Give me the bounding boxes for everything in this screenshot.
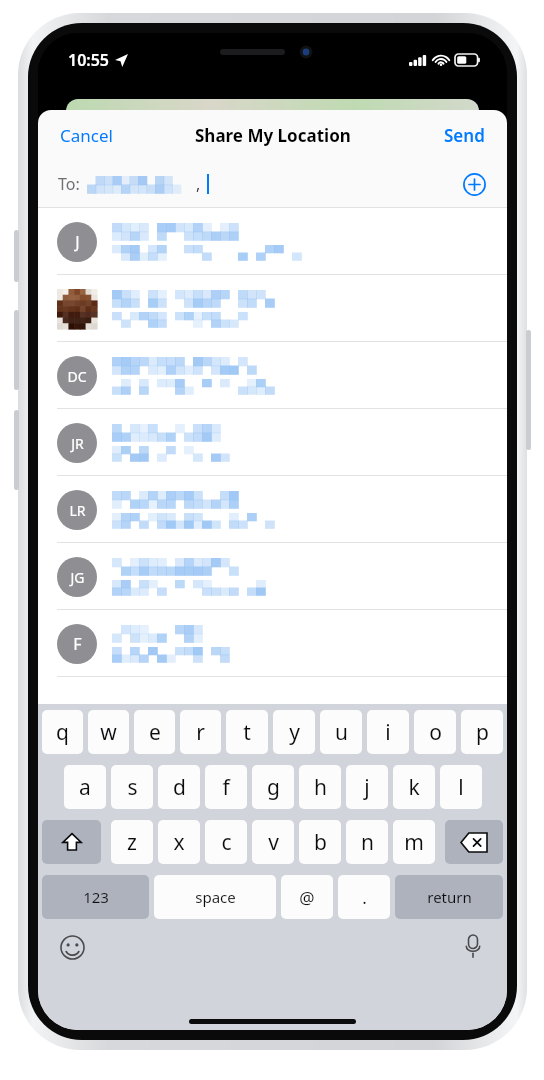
button[interactable]: r [180, 710, 221, 754]
staticText: b [314, 828, 327, 857]
staticText: o [429, 718, 442, 747]
staticText: Send [444, 124, 485, 147]
button[interactable]: o [414, 710, 456, 754]
button[interactable]: . [338, 875, 390, 919]
staticText: , [196, 173, 201, 195]
button[interactable]: e [134, 710, 175, 754]
button[interactable]: DC [38, 342, 507, 409]
button[interactable]: Shift [42, 820, 101, 864]
button[interactable]: Emoji keyboard [52, 927, 92, 967]
button[interactable]: Delete [445, 820, 503, 864]
staticText: To: [58, 173, 80, 195]
button[interactable]: space [154, 875, 276, 919]
button[interactable]: p [461, 710, 503, 754]
button[interactable]: h [299, 765, 341, 809]
staticText: r [196, 718, 205, 747]
staticText: z [127, 828, 137, 857]
button[interactable]: m [393, 820, 435, 864]
staticText: p [476, 718, 489, 747]
staticText: w [100, 718, 117, 747]
staticText: 10:55 [68, 49, 110, 71]
button[interactable]: a [64, 765, 106, 809]
button[interactable]: j [346, 765, 388, 809]
button[interactable]: d [158, 765, 200, 809]
button[interactable]: c [205, 820, 247, 864]
staticText: a [79, 773, 91, 802]
button[interactable]: q [42, 710, 83, 754]
staticText: space [195, 887, 236, 907]
button[interactable]: Add contact [457, 167, 491, 201]
staticText: @ [299, 886, 315, 909]
staticText: F [73, 633, 82, 655]
button[interactable]: 123 [42, 875, 149, 919]
button[interactable]: @ [281, 875, 333, 919]
staticText: v [268, 828, 279, 857]
button[interactable]: g [252, 765, 294, 809]
button[interactable]: LR [38, 476, 507, 543]
button[interactable]: x [158, 820, 200, 864]
staticText: Cancel [60, 124, 113, 147]
button[interactable]: To: [38, 160, 507, 208]
button[interactable]: y [273, 710, 315, 754]
staticText: return [427, 887, 472, 907]
button[interactable]: n [346, 820, 388, 864]
button[interactable] [38, 275, 507, 342]
button[interactable]: t [226, 710, 268, 754]
staticText: c [221, 828, 232, 857]
staticText: n [361, 828, 374, 857]
button[interactable]: Cancel [54, 119, 119, 152]
button[interactable]: JG [38, 543, 507, 610]
staticText: i [385, 718, 391, 747]
staticText: l [458, 773, 464, 802]
staticText: 123 [83, 887, 109, 907]
staticText: e [149, 718, 161, 747]
staticText: y [289, 718, 300, 747]
staticText: DC [67, 367, 87, 386]
staticText: g [267, 773, 280, 802]
staticText: j [364, 773, 370, 802]
staticText: . [362, 886, 367, 909]
button[interactable]: v [252, 820, 294, 864]
button[interactable]: w [88, 710, 129, 754]
staticText: f [222, 773, 230, 802]
staticText: JG [70, 568, 85, 587]
button[interactable]: F [38, 610, 507, 677]
button[interactable]: k [393, 765, 435, 809]
button[interactable]: J [38, 208, 507, 275]
staticText: s [127, 773, 138, 802]
staticText: JR [71, 434, 84, 453]
button[interactable]: Send [438, 119, 491, 152]
button[interactable]: i [367, 710, 409, 754]
staticText: k [408, 773, 420, 802]
staticText: q [56, 718, 69, 747]
button[interactable]: return [395, 875, 503, 919]
staticText: u [335, 718, 348, 747]
staticText: Share My Location [195, 124, 351, 147]
staticText: LR [69, 501, 86, 520]
button[interactable]: z [111, 820, 153, 864]
staticText: d [173, 773, 186, 802]
button[interactable]: l [440, 765, 482, 809]
staticText: h [314, 773, 327, 802]
button[interactable]: Dictation [453, 927, 493, 967]
button[interactable]: JR [38, 409, 507, 476]
staticText: x [173, 828, 185, 857]
button[interactable]: b [299, 820, 341, 864]
button[interactable]: u [320, 710, 362, 754]
button[interactable]: f [205, 765, 247, 809]
staticText: J [75, 231, 80, 253]
staticText: t [243, 718, 251, 747]
button[interactable]: s [111, 765, 153, 809]
staticText: m [404, 828, 424, 857]
